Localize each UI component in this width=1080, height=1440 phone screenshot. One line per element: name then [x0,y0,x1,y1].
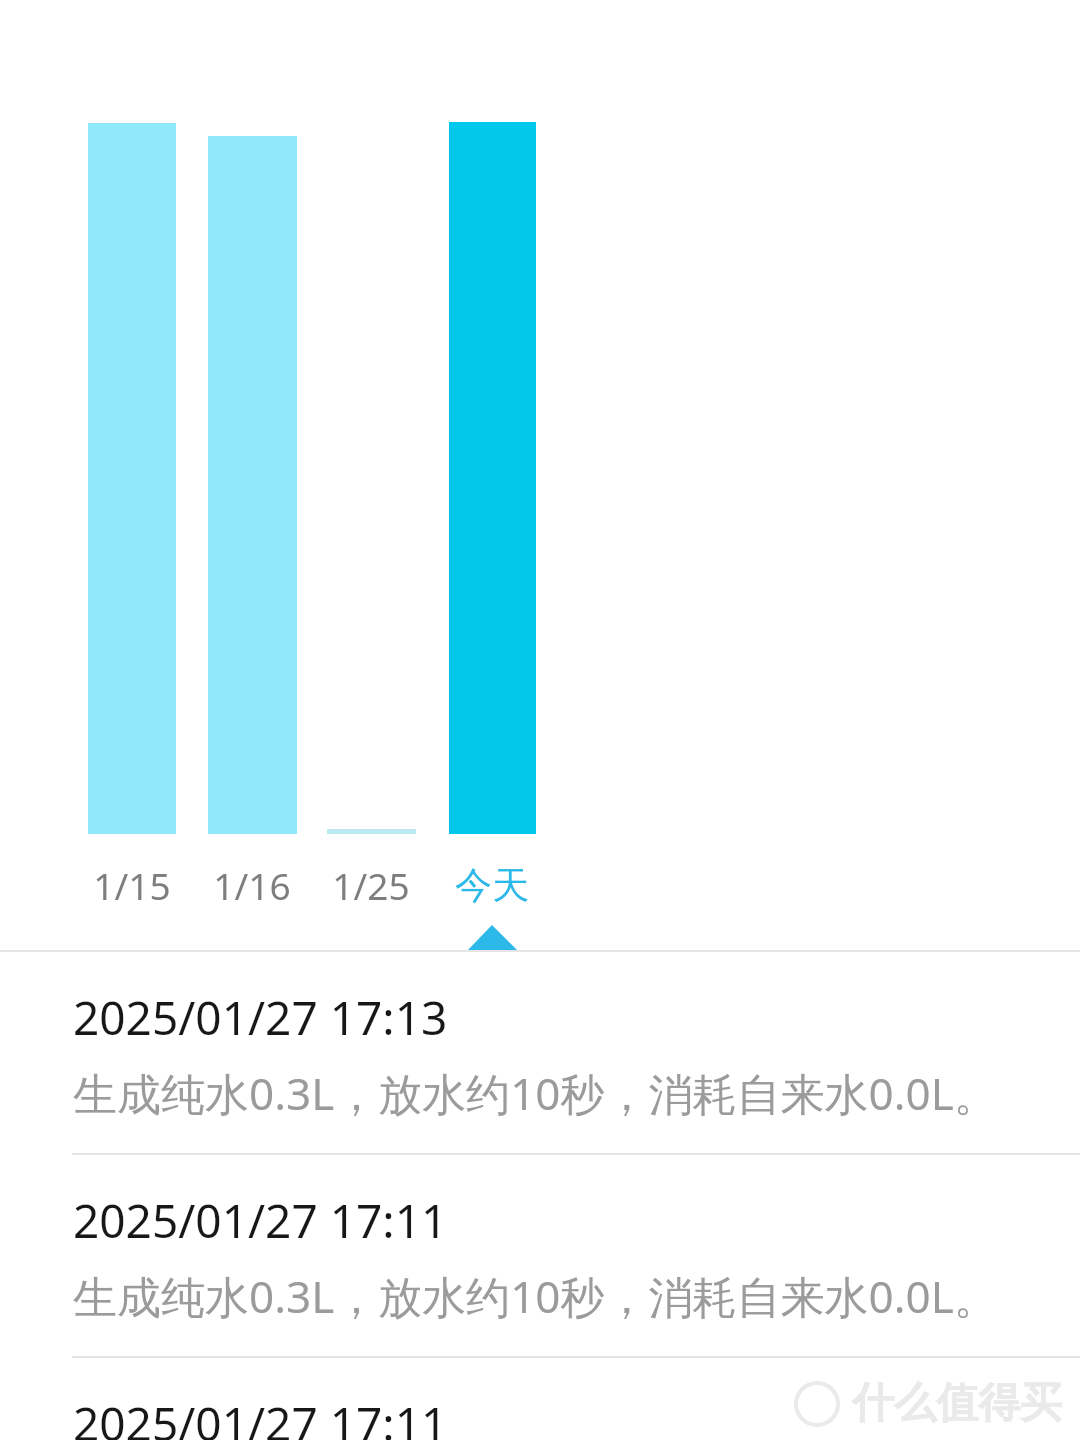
button[interactable]: 2025/01/27 17:11 [0,1358,1080,1440]
button[interactable]: 2025/01/27 17:11 [0,1155,1080,1358]
staticText: 1/15 [93,860,171,910]
button[interactable]: 1/25 [301,856,441,914]
staticText: 1/16 [213,860,291,910]
staticText: 2025/01/27 17:13 [73,986,448,1049]
staticText: 1/25 [332,860,410,910]
button[interactable]: 1/16 [182,856,322,914]
button[interactable]: 今天 [422,856,562,914]
staticText: 2025/01/27 17:11 [73,1392,448,1440]
staticText: 什么值得买 [852,1377,1062,1430]
other: 什么值得买 [794,1377,1062,1430]
button[interactable]: 1/15 [62,856,202,914]
button[interactable]: 2025/01/27 17:13 [0,952,1080,1155]
staticText: 2025/01/27 17:11 [73,1189,448,1252]
staticText: 今天 [455,862,529,909]
staticText: 生成纯水0.3L，放水约10秒，消耗自来水0.0L。 [73,1266,998,1326]
staticText: 生成纯水0.3L，放水约10秒，消耗自来水0.0L。 [73,1063,998,1123]
